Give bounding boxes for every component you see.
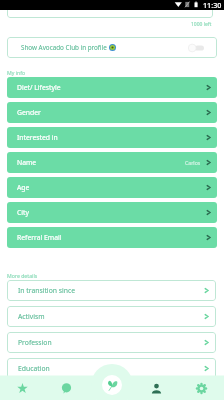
staticText: Interested in: [17, 133, 58, 142]
button[interactable]: City: [7, 202, 217, 223]
staticText: In transition since: [18, 286, 76, 295]
staticText: Show Avocado Club in profile: [21, 43, 107, 52]
staticText: Diet/ Lifestyle: [17, 83, 61, 92]
staticText: My info: [7, 69, 26, 76]
button[interactable]: Home: [89, 376, 134, 400]
staticText: Referral Email: [17, 233, 62, 242]
staticText: 11:30: [203, 0, 222, 10]
button[interactable]: Name: [7, 152, 217, 173]
staticText: 1000 left: [191, 21, 212, 28]
staticText: Activism: [18, 312, 45, 321]
button[interactable]: Settings: [179, 376, 224, 400]
staticText: Profession: [18, 338, 52, 347]
button[interactable]: Diet/ Lifestyle: [7, 77, 217, 98]
staticText: More details: [7, 272, 38, 279]
button[interactable]: Profession: [7, 332, 216, 353]
button[interactable]: Discover: [0, 376, 44, 400]
button[interactable]: Interested in: [7, 127, 217, 148]
button[interactable]: Activism: [7, 306, 216, 327]
button[interactable]: [7, 0, 213, 18]
button[interactable]: Age: [7, 177, 217, 198]
staticText: Age: [17, 183, 30, 192]
staticText: Education: [18, 364, 50, 373]
staticText: Gender: [17, 108, 41, 117]
button[interactable]: Show Avocado Club in profile: [7, 37, 217, 58]
button[interactable]: Messages: [44, 376, 89, 400]
button[interactable]: Profile: [134, 376, 179, 400]
button[interactable]: Gender: [7, 102, 217, 123]
staticText: Carlos: [185, 159, 201, 166]
staticText: City: [17, 208, 29, 217]
button[interactable]: Education: [7, 358, 216, 379]
button[interactable]: In transition since: [7, 280, 216, 301]
staticText: Name: [17, 158, 37, 167]
button[interactable]: Referral Email: [7, 227, 217, 248]
